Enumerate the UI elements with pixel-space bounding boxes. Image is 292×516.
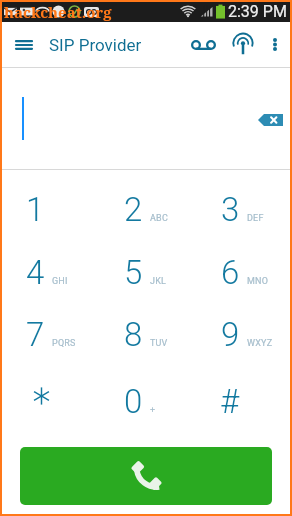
button[interactable]: 3 [195, 170, 292, 249]
button[interactable]: 7 [0, 295, 98, 373]
staticText: + [150, 405, 156, 416]
staticText: 1 [26, 190, 45, 229]
button[interactable]: 2 [98, 170, 195, 249]
button[interactable]: Delete [254, 108, 286, 132]
staticText: 3 [221, 190, 240, 229]
button[interactable]: # [195, 373, 292, 430]
button[interactable]: Call [20, 447, 272, 505]
staticText: GHI [52, 276, 68, 287]
staticText: 9 [221, 315, 240, 354]
button[interactable]: Voicemail [185, 22, 221, 67]
button[interactable]: More options [261, 22, 289, 67]
button[interactable]: 0 [98, 373, 195, 430]
button[interactable]: 1 [0, 170, 98, 249]
button[interactable]: SIP account status [225, 22, 261, 67]
button[interactable]: 4 [0, 249, 98, 295]
button[interactable]: 8 [98, 295, 195, 373]
button[interactable]: 9 [195, 295, 292, 373]
staticText: 6 [221, 253, 240, 292]
staticText: 7 [26, 315, 45, 354]
staticText: 8 [124, 315, 143, 354]
button[interactable]: 6 [195, 249, 292, 295]
staticText: PQRS [52, 338, 76, 349]
staticText: 4 [26, 253, 45, 292]
staticText: MNO [247, 276, 269, 287]
staticText: # [220, 382, 240, 421]
staticText: TUV [150, 338, 168, 349]
staticText: 5 [124, 253, 143, 292]
staticText: WXYZ [247, 338, 273, 349]
button[interactable] [0, 373, 98, 430]
staticText: 2:39 PM [228, 2, 287, 21]
staticText: hackcheat.org [4, 2, 112, 22]
staticText: 0 [124, 382, 143, 421]
button[interactable]: Navigation menu [0, 22, 48, 67]
staticText: ABC [150, 213, 168, 224]
staticText: DEF [247, 213, 264, 224]
button[interactable]: 5 [98, 249, 195, 295]
staticText: 2 [124, 190, 143, 229]
staticText: JKL [150, 276, 167, 287]
staticText: SIP Provider [49, 35, 142, 55]
